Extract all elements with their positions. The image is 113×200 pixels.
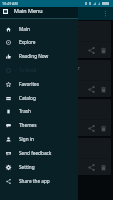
button[interactable]: The Adventures of Tom Sawyer (2, 60, 111, 97)
button[interactable]: Themes (0, 118, 78, 132)
staticText: Send feedback (19, 150, 52, 156)
button[interactable]: Explore (0, 35, 78, 49)
button[interactable]: Catalog (0, 91, 78, 105)
button[interactable]: Main (0, 22, 78, 36)
button[interactable]: More options (101, 9, 110, 18)
staticText: Fantastic Beasts and Where to (5, 25, 79, 32)
button[interactable]: Delete (97, 161, 109, 173)
button[interactable]: The Murders in This Town (2, 99, 111, 136)
button[interactable]: Delete (97, 83, 109, 95)
button[interactable]: Send feedback (0, 146, 78, 160)
staticText: Share the app (19, 178, 50, 184)
staticText: To Read (19, 67, 37, 73)
button[interactable]: Setting (0, 160, 78, 174)
staticText: 10:49 AM (2, 1, 18, 6)
button[interactable]: Favorites (0, 77, 78, 91)
button[interactable]: Share (85, 122, 97, 134)
button[interactable]: Share (85, 161, 97, 173)
staticText: Catalog (19, 95, 36, 101)
staticText: The Adventures of Tom Sawyer (5, 64, 81, 71)
staticText: Explore (19, 39, 36, 45)
button[interactable]: Deep Dark Dungeons Below (2, 138, 111, 175)
button[interactable]: Trash (0, 104, 78, 118)
staticText: Favorites (19, 81, 40, 87)
staticText: Gary Gygax (5, 151, 28, 157)
button[interactable]: Sign in (0, 132, 78, 146)
staticText: Setting (19, 164, 35, 170)
staticText: The Murders in This Town (5, 103, 68, 110)
button[interactable]: Reading Now (0, 49, 78, 63)
staticText: Agatha Christie (5, 112, 36, 118)
staticText: Trash (19, 108, 31, 114)
button[interactable]: Delete (97, 122, 109, 134)
staticText: Sign in (19, 136, 34, 142)
button[interactable]: Fantastic Beasts and Where to (2, 21, 111, 58)
staticText: Themes (19, 122, 37, 128)
button[interactable]: Share (85, 44, 97, 56)
button[interactable]: Delete (97, 44, 109, 56)
staticText: Main Menu (14, 7, 43, 14)
staticText: Main (19, 26, 30, 32)
button[interactable]: Share (85, 83, 97, 95)
staticText: Reading Now (19, 53, 49, 59)
button[interactable]: Share the app (0, 174, 78, 188)
